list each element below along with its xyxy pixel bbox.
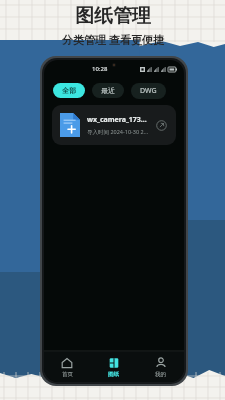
staticText: 导入时间 2024-10-30 22:28:01 — [87, 128, 150, 136]
staticText: DWG — [140, 86, 157, 96]
staticText: 图纸管理 — [75, 4, 151, 28]
staticText: 图纸 — [108, 371, 119, 378]
staticText: 10:28 — [92, 65, 108, 73]
button[interactable]: 首页 — [44, 352, 90, 382]
button[interactable]: DWG — [131, 83, 166, 99]
button[interactable]: wx_camera_173009507119… — [52, 105, 176, 145]
button[interactable]: 图纸 — [90, 352, 137, 382]
staticText: wx_camera_173009507119… — [87, 115, 150, 125]
button[interactable]: 我的 — [137, 352, 184, 382]
button[interactable]: 最近 — [92, 83, 124, 98]
button[interactable]: Share — [154, 118, 168, 132]
button[interactable]: 全部 — [53, 83, 85, 98]
staticText: 全部 — [62, 86, 76, 95]
staticText: 分类管理 查看更便捷 — [62, 32, 164, 47]
staticText: 我的 — [155, 371, 166, 378]
staticText: 最近 — [101, 86, 115, 95]
staticText: 首页 — [62, 371, 73, 378]
